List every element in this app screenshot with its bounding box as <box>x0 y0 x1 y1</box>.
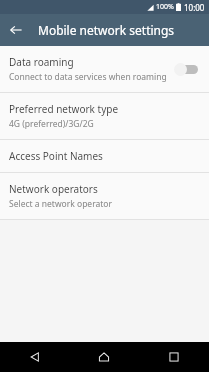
button[interactable]: Network operators <box>0 173 209 219</box>
button[interactable]: Back <box>0 14 32 46</box>
staticText: Mobile network settings <box>38 22 175 38</box>
staticText: 4G (preferred)/3G/2G <box>9 118 94 130</box>
staticText: Data roaming <box>9 55 74 69</box>
staticText: Connect to data services when roaming <box>9 71 167 83</box>
button[interactable]: Data roaming toggle <box>174 62 200 76</box>
staticText: Network operators <box>9 182 98 196</box>
staticText: Select a network operator <box>9 198 112 210</box>
staticText: Preferred network type <box>9 102 119 116</box>
button[interactable]: Back <box>0 342 69 372</box>
button[interactable]: Recent apps <box>139 342 209 372</box>
button[interactable]: Data roaming <box>0 46 209 92</box>
staticText: Access Point Names <box>9 149 103 163</box>
button[interactable]: Access Point Names <box>0 140 209 172</box>
staticText: 100% <box>156 2 174 12</box>
button[interactable]: Home <box>69 342 139 372</box>
button[interactable]: Preferred network type <box>0 93 209 139</box>
staticText: 10:00 <box>184 2 205 13</box>
